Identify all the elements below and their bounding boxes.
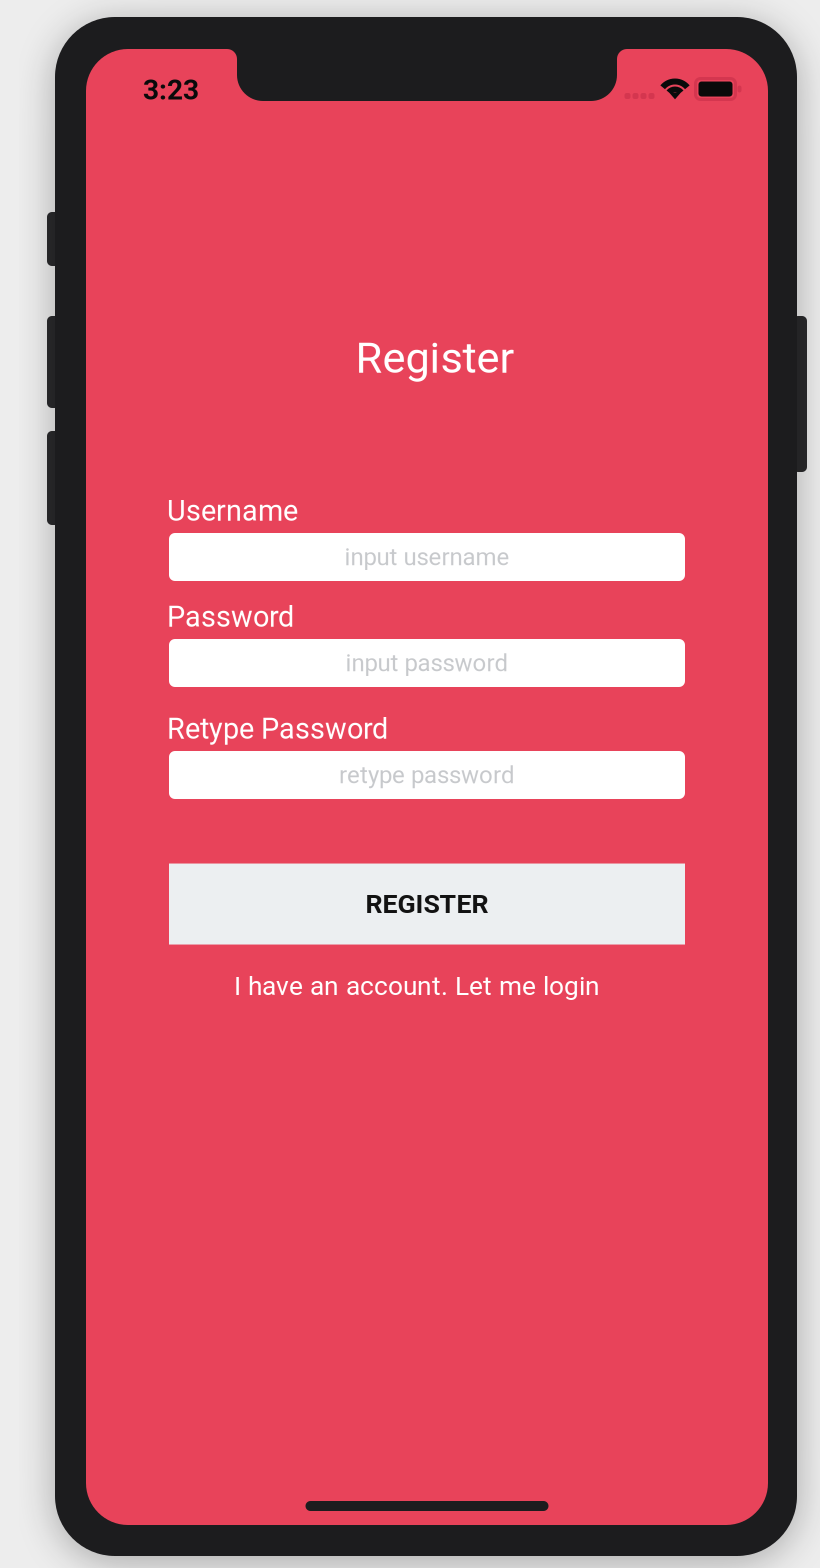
button[interactable]: I have an account. Let me login <box>159 966 675 1006</box>
staticText: input username <box>344 543 509 571</box>
button[interactable]: REGISTER <box>169 863 685 944</box>
staticText: input password <box>345 649 508 677</box>
staticText: REGISTER <box>365 888 488 920</box>
staticText: Register <box>355 333 514 383</box>
staticText: Password <box>167 600 294 634</box>
staticText: 3:23 <box>143 74 199 106</box>
button[interactable]: input username <box>169 533 685 581</box>
staticText: Retype Password <box>167 712 388 746</box>
button[interactable]: retype password <box>169 751 685 799</box>
staticText: retype password <box>339 761 515 789</box>
staticText: Username <box>167 494 298 528</box>
button[interactable]: input password <box>169 639 685 687</box>
staticText: I have an account. Let me login <box>234 971 600 1001</box>
